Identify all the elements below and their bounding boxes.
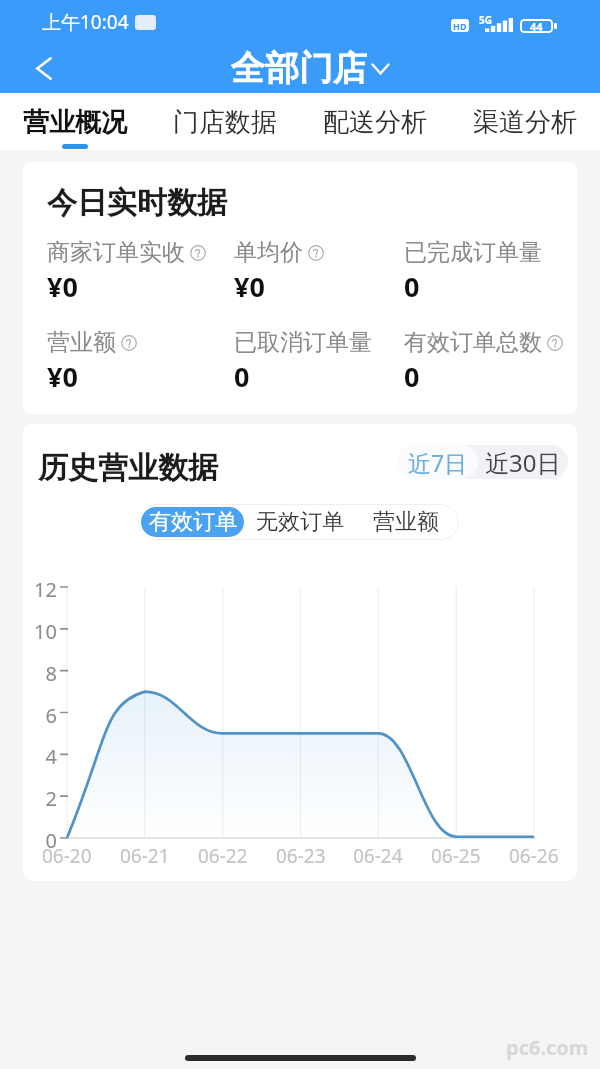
staticText: 已完成订单量 (404, 238, 542, 267)
staticText: ¥0 (47, 358, 78, 395)
button[interactable]: 近30日 (478, 445, 568, 479)
staticText: 0 (23, 827, 57, 854)
staticText: 06-24 (353, 843, 403, 869)
staticText: 单均价 (234, 238, 303, 267)
staticText: ¥0 (47, 268, 78, 305)
staticText: pc6.com (506, 1034, 589, 1061)
staticText: 有效订单总数 (404, 328, 542, 357)
staticText: 06-25 (431, 843, 481, 869)
staticText: 今日实时数据 (47, 184, 227, 222)
staticText: 06-22 (198, 843, 248, 869)
staticText: ¥0 (234, 268, 265, 305)
button[interactable]: 近7日 (398, 445, 478, 479)
staticText: 全部门店 (231, 47, 367, 90)
button[interactable]: Back (0, 44, 60, 93)
staticText: 渠道分析 (473, 106, 577, 139)
staticText: 0 (404, 268, 420, 305)
staticText: 营业概况 (23, 106, 127, 139)
staticText: HD (453, 20, 467, 32)
staticText: 5G (479, 13, 492, 27)
staticText: 已取消订单量 (234, 328, 372, 357)
staticText: 8 (23, 660, 57, 687)
staticText: 营业额 (373, 508, 439, 536)
staticText: 06-26 (509, 843, 559, 869)
button[interactable]: 营业额 (353, 504, 459, 540)
staticText: 近7日 (408, 447, 468, 478)
button[interactable]: 渠道分析 (450, 93, 600, 150)
staticText: 上午10:04 (42, 9, 129, 35)
button[interactable]: 配送分析 (300, 93, 450, 150)
staticText: 0 (234, 358, 250, 395)
staticText: 有效订单 (149, 508, 237, 536)
staticText: 44 (530, 19, 543, 33)
button[interactable]: 营业概况 (0, 93, 150, 150)
staticText: 10 (23, 618, 57, 645)
staticText: 12 (23, 576, 57, 603)
staticText: 历史营业数据 (38, 449, 218, 487)
staticText: 2 (23, 785, 57, 812)
staticText: 06-21 (120, 843, 170, 869)
staticText: 06-20 (42, 843, 92, 869)
staticText: 0 (404, 358, 420, 395)
staticText: 近30日 (485, 446, 561, 479)
staticText: 商家订单实收 (47, 238, 185, 267)
button[interactable]: 门店数据 (150, 93, 300, 150)
staticText: 配送分析 (323, 106, 427, 139)
staticText: 6 (23, 702, 57, 729)
button[interactable]: 全部门店 (231, 47, 390, 90)
staticText: 无效订单 (256, 508, 344, 536)
staticText: 06-23 (276, 843, 326, 869)
button[interactable]: 无效订单 (247, 504, 353, 540)
button[interactable]: 有效订单 (141, 507, 244, 537)
staticText: 4 (23, 743, 57, 770)
staticText: 营业额 (47, 328, 116, 357)
staticText: 门店数据 (173, 106, 277, 139)
